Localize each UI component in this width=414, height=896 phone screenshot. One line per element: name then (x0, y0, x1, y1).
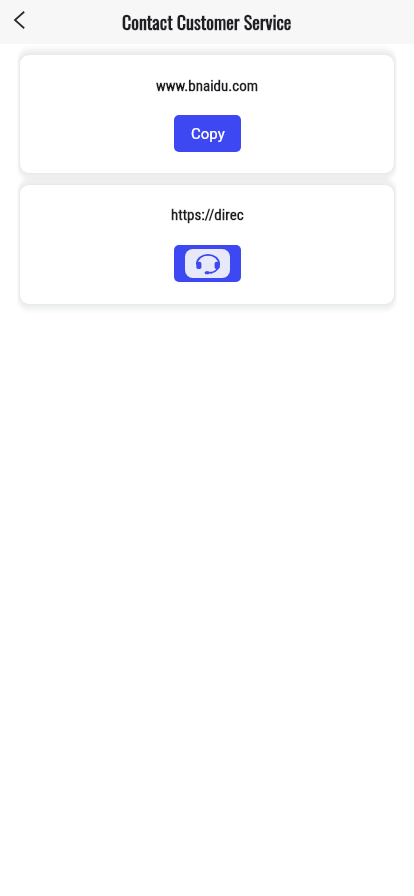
button[interactable]: Contact customer service (174, 245, 241, 282)
staticText: Copy (191, 125, 225, 143)
button[interactable]: Copy (174, 115, 241, 152)
staticText: Contact Customer Service (122, 9, 292, 36)
button[interactable]: Back (0, 0, 40, 44)
staticText: www.bnaidu.com (156, 77, 258, 95)
staticText: https://direc (171, 206, 244, 224)
